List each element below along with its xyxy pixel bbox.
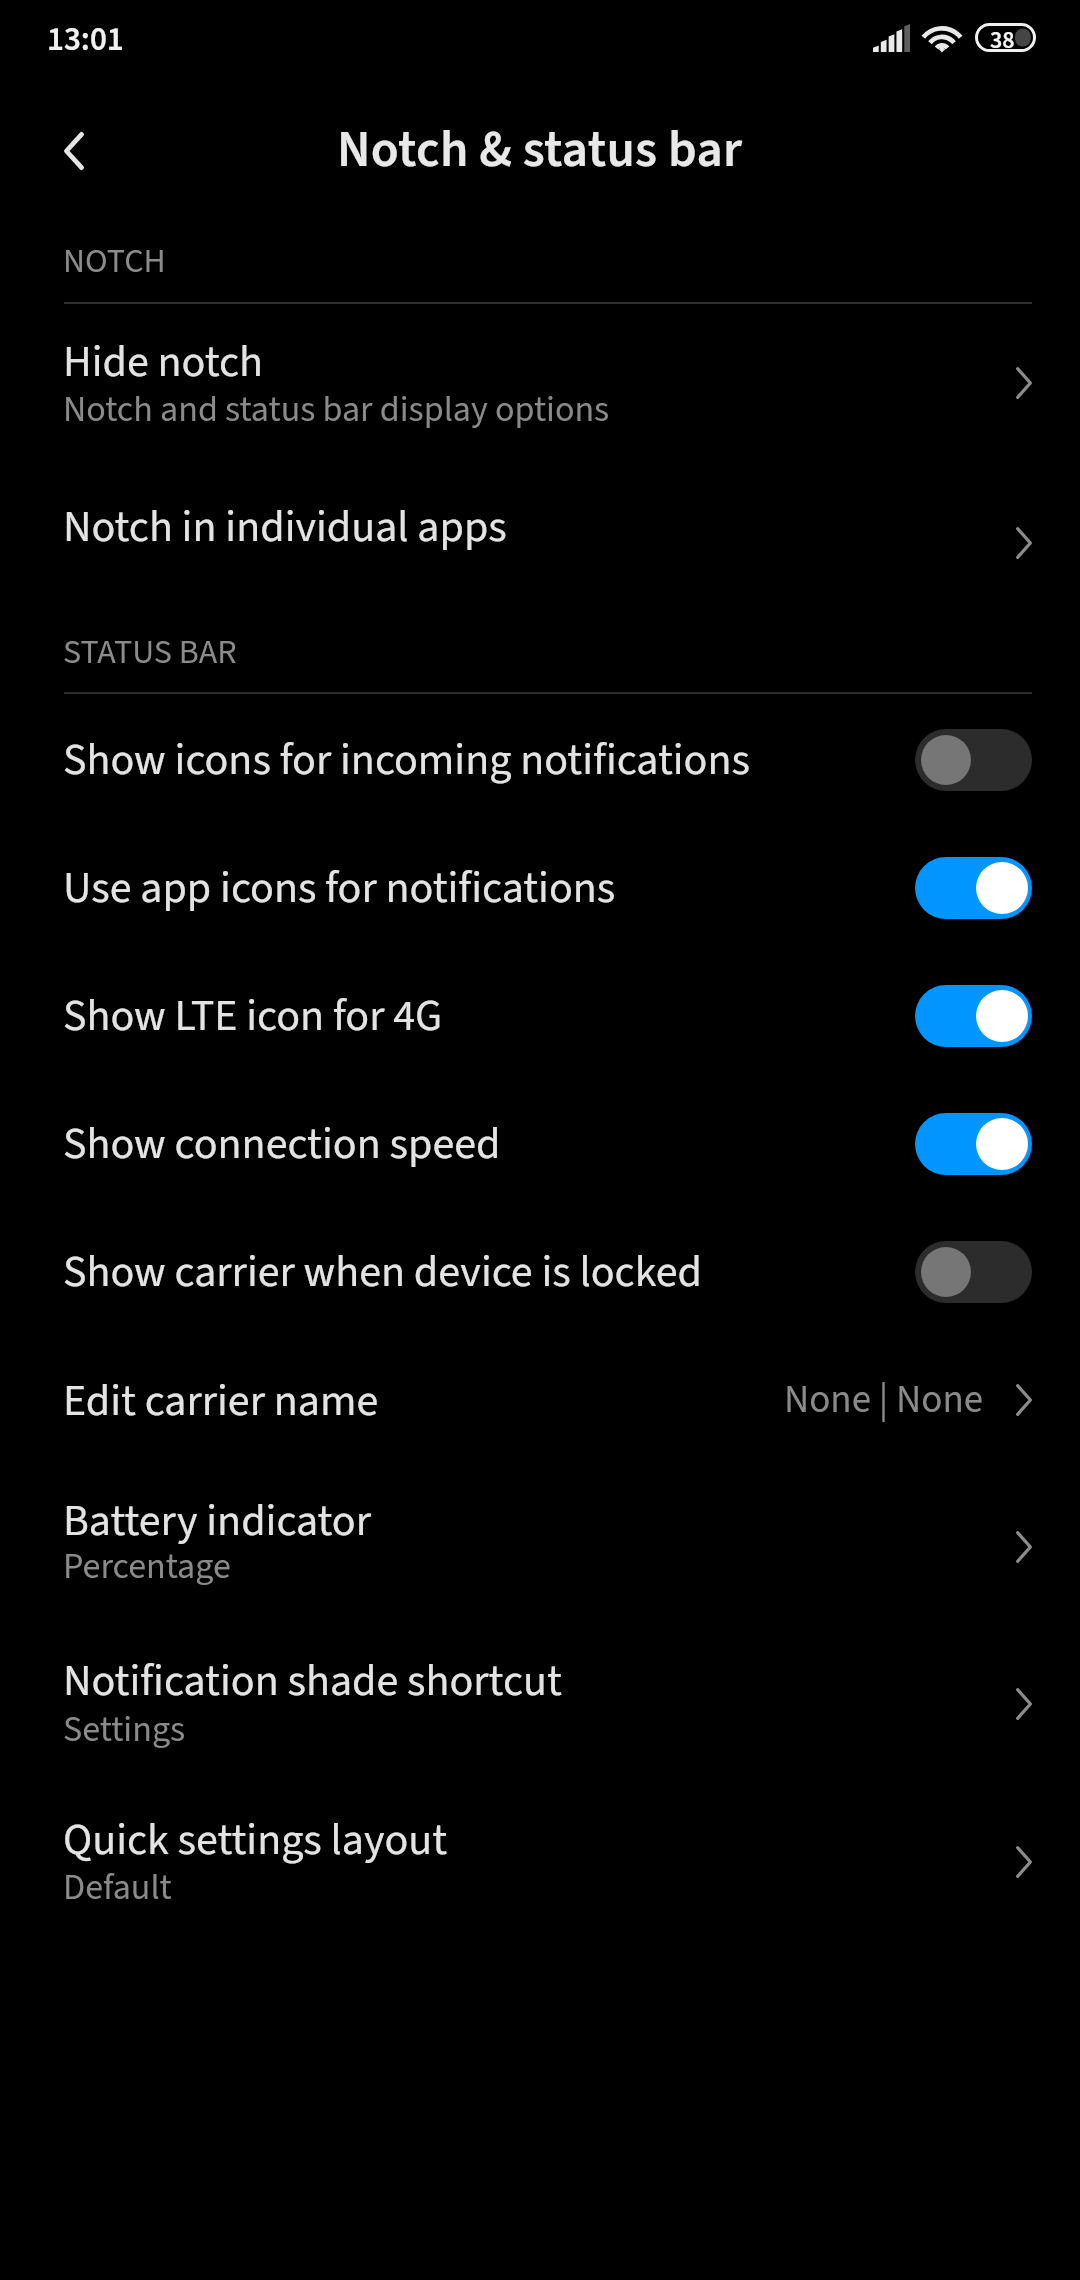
staticText: STATUS BAR: [63, 628, 237, 676]
button[interactable]: Show LTE icon for 4G: [0, 966, 1080, 1094]
staticText: Notch in individual apps: [63, 496, 507, 559]
staticText: Edit carrier name: [63, 1370, 379, 1433]
staticText: Show LTE icon for 4G: [63, 985, 443, 1048]
staticText: Notch & status bar: [337, 114, 743, 187]
staticText: Notch and status bar display options: [63, 384, 610, 435]
staticText: Settings: [63, 1704, 186, 1755]
staticText: Battery indicator: [63, 1490, 371, 1553]
button[interactable]: Battery indicator: [0, 1470, 1080, 1615]
button[interactable]: Toggle on: [915, 857, 1032, 919]
staticText: Hide notch: [63, 331, 263, 394]
button[interactable]: Use app icons for notifications: [0, 838, 1080, 966]
button[interactable]: Show icons for incoming notifications: [0, 710, 1080, 838]
button[interactable]: Notification shade shortcut: [0, 1615, 1080, 1775]
button[interactable]: Edit carrier name: [0, 1348, 1080, 1470]
button[interactable]: Notch in individual apps: [0, 462, 1080, 600]
staticText: Show icons for incoming notifications: [63, 729, 750, 792]
button[interactable]: Toggle off: [915, 729, 1032, 791]
staticText: Notification shade shortcut: [63, 1650, 562, 1713]
button[interactable]: Toggle off: [915, 1241, 1032, 1303]
button[interactable]: Toggle on: [915, 985, 1032, 1047]
staticText: 13:01: [47, 16, 124, 63]
staticText: 38: [990, 23, 1015, 52]
staticText: None | None: [784, 1372, 984, 1428]
staticText: Default: [63, 1862, 172, 1913]
button[interactable]: Show connection speed: [0, 1094, 1080, 1222]
button[interactable]: Quick settings layout: [0, 1775, 1080, 1935]
button[interactable]: Hide notch: [0, 318, 1080, 462]
staticText: Show carrier when device is locked: [63, 1241, 702, 1304]
button[interactable]: Show carrier when device is locked: [0, 1222, 1080, 1350]
button[interactable]: Toggle on: [915, 1113, 1032, 1175]
staticText: Use app icons for notifications: [63, 857, 616, 920]
staticText: Percentage: [63, 1541, 231, 1592]
staticText: Show connection speed: [63, 1113, 501, 1176]
staticText: Quick settings layout: [63, 1809, 448, 1872]
button[interactable]: Back: [18, 95, 130, 207]
staticText: NOTCH: [63, 237, 166, 285]
